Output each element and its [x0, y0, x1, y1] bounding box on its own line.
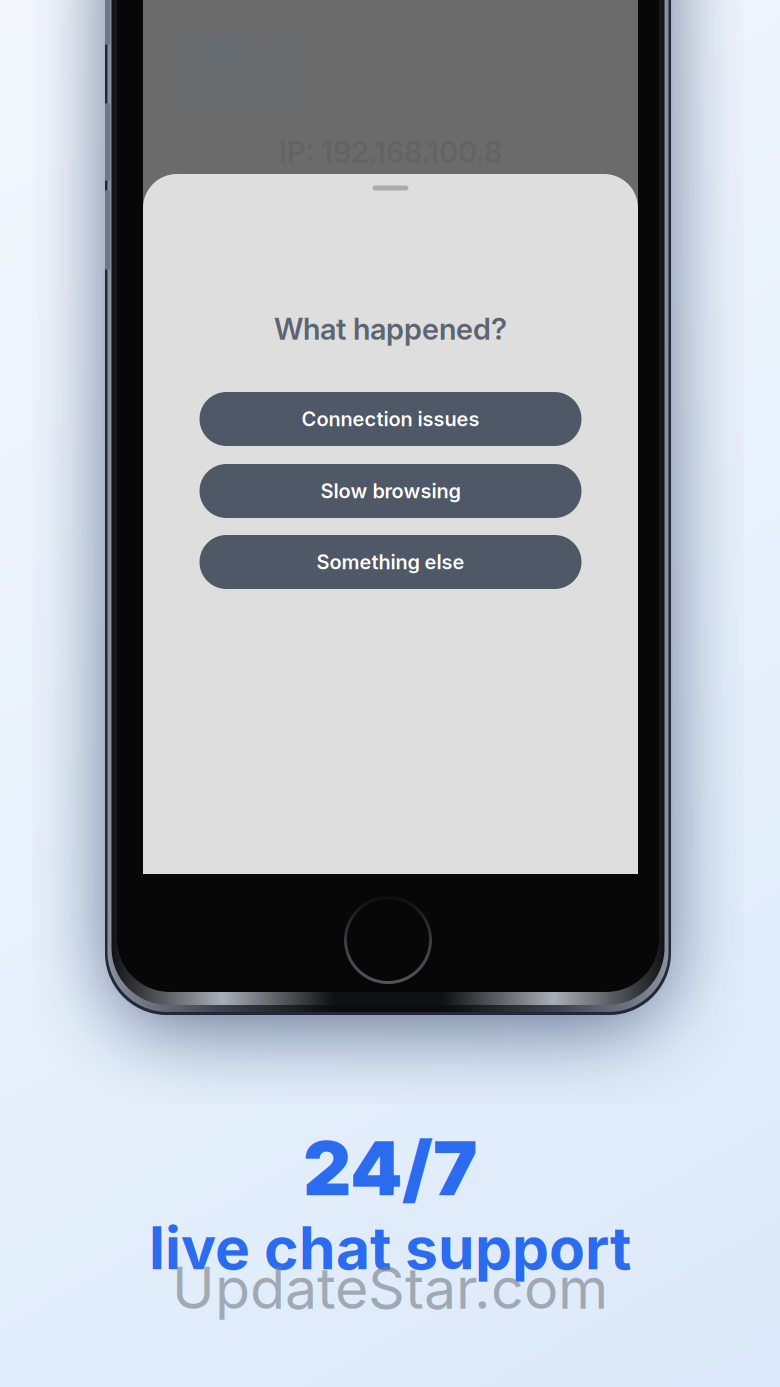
staticText: What happened?	[274, 311, 507, 347]
staticText: live chat support	[149, 1212, 631, 1283]
button[interactable]: Slow browsing	[199, 464, 581, 518]
staticText: Connection issues	[301, 407, 479, 431]
staticText: Something else	[316, 550, 464, 574]
staticText: 24/7	[303, 1123, 477, 1213]
button[interactable]: Something else	[199, 535, 581, 589]
button[interactable]: Connection issues	[199, 392, 581, 446]
staticText: IP: 192.168.100.8	[279, 134, 502, 170]
staticText: Slow browsing	[320, 479, 460, 503]
staticText: UpdateStar.com	[172, 1253, 608, 1323]
